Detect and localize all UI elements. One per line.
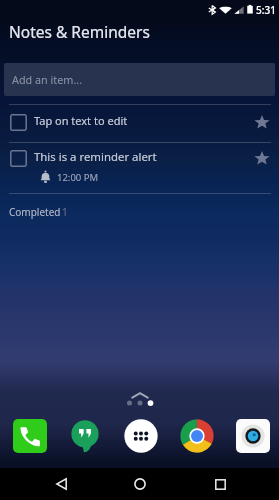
staticText: This is a reminder alert	[34, 149, 157, 165]
button[interactable]: Completed	[0, 194, 279, 232]
staticText: Notes & Reminders	[9, 21, 150, 42]
button[interactable]: Home	[120, 468, 160, 500]
button[interactable]: Back	[41, 468, 81, 500]
staticText: Add an item...	[12, 72, 83, 87]
button[interactable]: Mark complete	[0, 143, 279, 193]
button[interactable]: Mark complete	[6, 146, 30, 170]
button[interactable]: Mark complete	[6, 110, 30, 134]
staticText: 5:31	[256, 3, 276, 17]
button[interactable]: Star	[249, 109, 274, 134]
button[interactable]: Mark complete	[0, 105, 279, 142]
button[interactable]: Add an item...	[4, 63, 275, 96]
button[interactable]: Hangouts	[57, 419, 113, 453]
button[interactable]: Notes & Reminders	[0, 19, 279, 50]
button[interactable]: Recents	[200, 468, 240, 500]
button[interactable]: All apps	[113, 419, 169, 453]
button[interactable]: Chrome	[169, 419, 225, 453]
staticText: Tap on text to edit	[34, 113, 128, 128]
staticText: 1	[62, 205, 68, 219]
staticText: 12:00 PM	[57, 171, 99, 184]
staticText: Completed	[9, 205, 61, 219]
button[interactable]: Star	[249, 145, 274, 170]
button[interactable]: Phone	[2, 419, 57, 453]
button[interactable]: Camera	[225, 419, 279, 453]
